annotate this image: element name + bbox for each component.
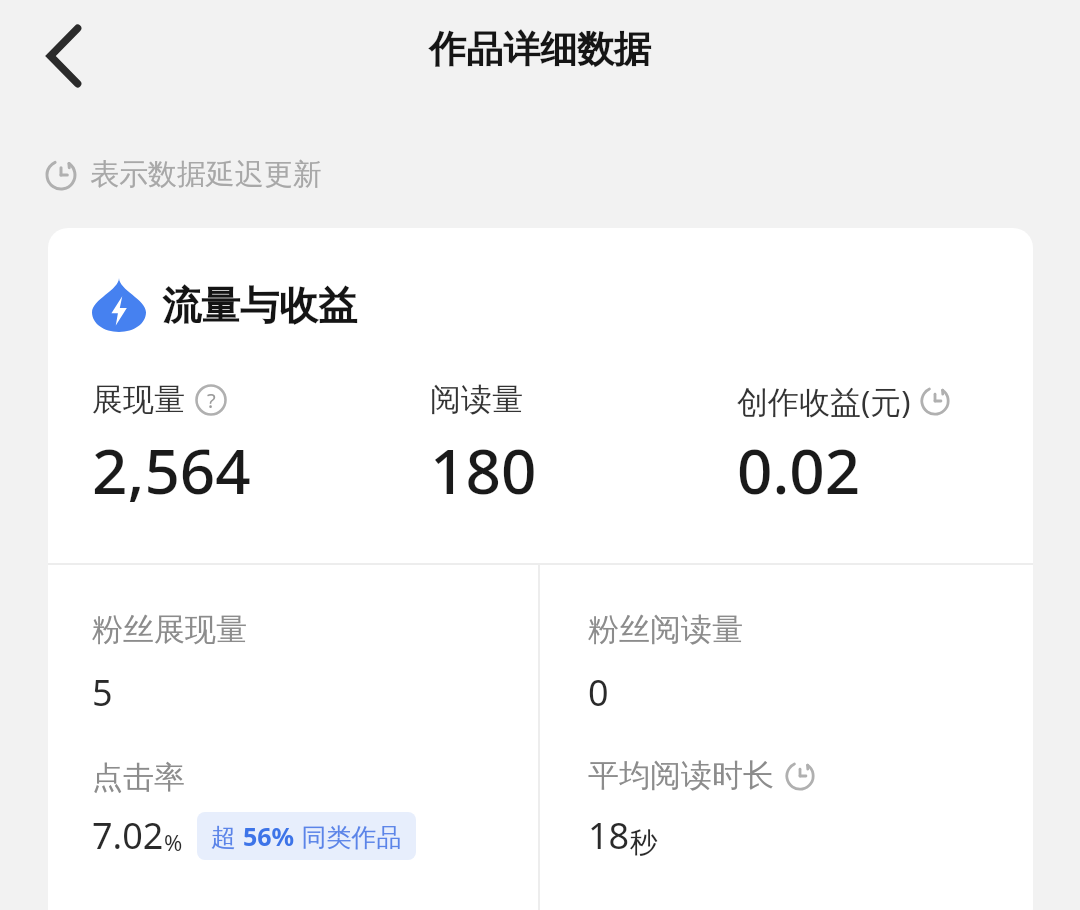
staticText: 点击率 <box>92 758 185 797</box>
staticText: 秒 <box>630 825 658 860</box>
staticText: 表示数据延迟更新 <box>90 156 322 193</box>
staticText: 0 <box>588 668 609 717</box>
button[interactable]: 超 <box>197 812 416 860</box>
staticText: 180 <box>430 428 537 512</box>
staticText: 7.02 <box>92 811 164 860</box>
staticText: 5 <box>92 668 113 717</box>
staticText: 展现量 <box>92 380 185 419</box>
staticText: 流量与收益 <box>162 281 357 330</box>
staticText: 2,564 <box>92 428 251 512</box>
staticText: 18 <box>588 811 630 860</box>
staticText: 56% <box>243 819 295 853</box>
staticText: 粉丝阅读量 <box>588 610 743 649</box>
staticText: 作品详细数据 <box>0 26 1080 73</box>
staticText: 超 <box>211 819 243 853</box>
button[interactable]: Back <box>30 14 98 98</box>
staticText: 平均阅读时长 <box>588 756 774 795</box>
staticText: 0.02 <box>737 428 861 512</box>
staticText: 粉丝展现量 <box>92 610 247 649</box>
staticText: 创作收益(元) <box>737 380 911 422</box>
button[interactable]: 展现量说明 <box>195 384 227 416</box>
staticText: % <box>164 827 183 857</box>
staticText: ? <box>207 387 216 414</box>
staticText: 同类作品 <box>295 819 402 853</box>
staticText: 阅读量 <box>430 380 523 419</box>
